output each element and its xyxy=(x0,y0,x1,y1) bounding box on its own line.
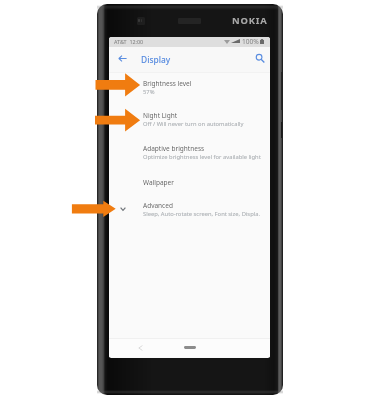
button[interactable]: Search xyxy=(252,50,269,67)
staticText: Display xyxy=(141,54,171,65)
staticText: Optimize brightness level for available … xyxy=(143,153,261,161)
button[interactable]: Brightness level xyxy=(109,75,270,108)
staticText: AT&T 12:00 xyxy=(114,38,144,45)
button[interactable]: Back xyxy=(133,341,147,355)
staticText: 57% xyxy=(143,88,155,96)
staticText: Night Light xyxy=(143,111,178,120)
staticText: Brightness level xyxy=(143,79,192,88)
button[interactable]: Night Light xyxy=(109,107,270,140)
button[interactable]: Wallpaper xyxy=(109,174,270,197)
button[interactable]: Advanced xyxy=(109,197,270,230)
staticText: Off / Will never turn on automatically xyxy=(143,120,244,128)
staticText: Advanced xyxy=(143,201,173,210)
staticText: 100% xyxy=(242,37,259,46)
staticText: Adaptive brightness xyxy=(143,144,205,153)
staticText: NOKIA xyxy=(232,14,268,27)
button[interactable]: Adaptive brightness xyxy=(109,140,270,173)
staticText: Sleep, Auto-rotate screen, Font size, Di… xyxy=(143,210,261,218)
staticText: Wallpaper xyxy=(143,178,174,187)
button[interactable]: Home xyxy=(184,346,196,349)
button[interactable]: Back xyxy=(114,50,131,67)
